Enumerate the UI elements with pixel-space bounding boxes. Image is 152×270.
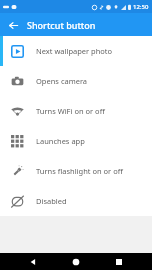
button[interactable]: Back: [4, 16, 22, 34]
staticText: Turns WiFi on or off: [36, 106, 105, 116]
button[interactable]: Disabled: [0, 186, 152, 216]
staticText: Next wallpaper photo: [36, 46, 113, 56]
button[interactable]: Next wallpaper photo: [0, 36, 152, 66]
button[interactable]: Opens camera: [0, 66, 152, 96]
button[interactable]: Turns flashlight on or off: [0, 156, 152, 186]
staticText: Opens camera: [36, 76, 88, 86]
button[interactable]: Home: [66, 253, 86, 270]
staticText: 12:50: [133, 3, 149, 11]
button[interactable]: Launches app: [0, 126, 152, 156]
staticText: Turns flashlight on or off: [36, 166, 123, 176]
staticText: Launches app: [36, 136, 85, 146]
staticText: Disabled: [36, 196, 67, 206]
button[interactable]: Back: [23, 253, 43, 270]
staticText: Shortcut button: [27, 19, 96, 31]
button[interactable]: Turns WiFi on or off: [0, 96, 152, 126]
button[interactable]: Recent apps: [109, 253, 129, 270]
